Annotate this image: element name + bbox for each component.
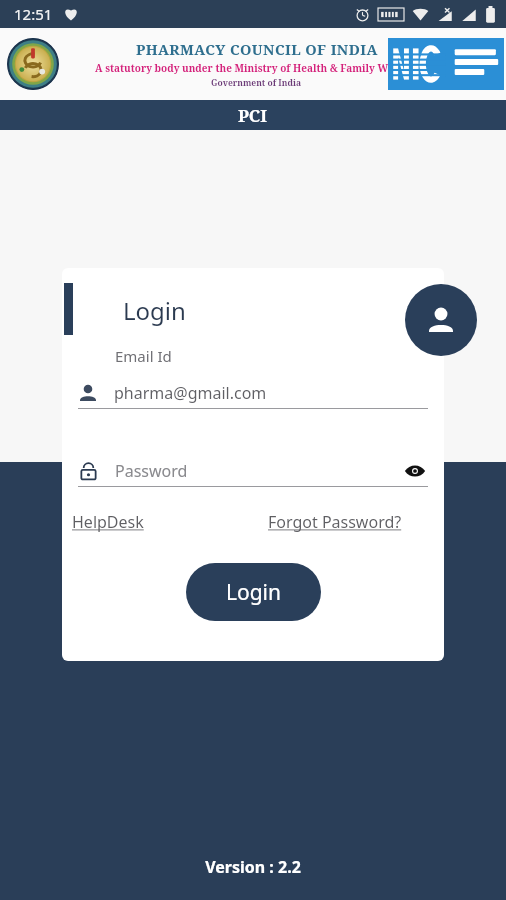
staticText: A statutory body under the Ministry of H… [95, 61, 418, 75]
button[interactable]: HelpDesk [68, 508, 148, 536]
staticText: 12:51 [14, 4, 53, 24]
staticText: HelpDesk [72, 511, 144, 533]
staticText: Login [123, 294, 186, 327]
button[interactable]: Show password [402, 458, 428, 484]
staticText: Version : 2.2 [205, 856, 301, 878]
staticText: Login [226, 578, 282, 607]
button[interactable]: Forgot Password? [264, 508, 406, 536]
staticText: Forgot Password? [268, 511, 402, 533]
staticText: PHARMACY COUNCIL OF INDIA [136, 39, 378, 59]
button[interactable]: Password [78, 456, 428, 486]
staticText: Password [115, 460, 188, 482]
staticText: pharma@gmail.com [114, 382, 267, 404]
staticText: Government of India [211, 77, 302, 89]
button[interactable]: Login [186, 563, 321, 621]
button[interactable]: Account [405, 284, 477, 356]
staticText: Email Id [115, 346, 172, 366]
staticText: PCI [238, 104, 268, 127]
button[interactable]: pharma@gmail.com [78, 378, 428, 408]
